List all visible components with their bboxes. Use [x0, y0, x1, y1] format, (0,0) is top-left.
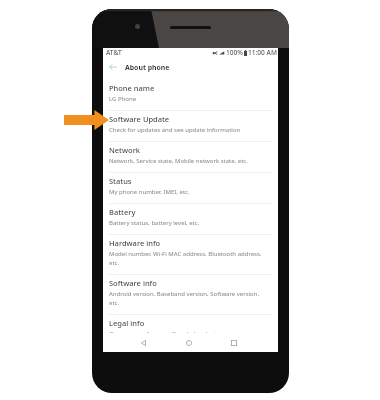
button[interactable]: Software Update — [103, 109, 278, 140]
staticText: Battery status, battery level, etc. — [109, 219, 200, 227]
staticText: Battery — [109, 207, 136, 217]
staticText: My phone number, IMEI, etc. — [109, 188, 190, 196]
staticText: 100% — [226, 48, 243, 57]
staticText: Open source licenses, Google legal, etc. — [109, 330, 221, 338]
staticText: Legal info — [109, 318, 145, 328]
staticText: Network, Service state, Mobile network s… — [109, 157, 248, 165]
button[interactable]: Recents — [211, 333, 256, 352]
other: Callout arrow — [64, 110, 109, 130]
button[interactable]: Back — [121, 333, 166, 352]
staticText: Model number, Wi-Fi MAC address, Bluetoo… — [109, 250, 266, 267]
staticText: Network — [109, 145, 140, 155]
button[interactable]: Status — [103, 171, 278, 202]
staticText: Software Update — [109, 114, 170, 124]
staticText: AT&T — [106, 48, 122, 57]
staticText: 11:00 AM — [248, 48, 277, 57]
button[interactable]: Back — [108, 61, 118, 73]
button[interactable]: Phone name — [103, 78, 278, 109]
staticText: LG Phone — [109, 95, 137, 103]
staticText: About phone — [125, 63, 170, 72]
button[interactable]: Hardware info — [103, 233, 278, 273]
button[interactable]: Battery — [103, 202, 278, 233]
button[interactable]: Software info — [103, 273, 278, 313]
button[interactable]: Home — [166, 333, 211, 352]
button[interactable]: Legal info — [103, 313, 278, 344]
staticText: Status — [109, 176, 132, 186]
button[interactable]: Network — [103, 140, 278, 171]
staticText: Android version, Baseband version, Softw… — [109, 290, 266, 307]
staticText: Phone name — [109, 83, 155, 93]
button[interactable]: Back — [103, 57, 278, 77]
staticText: Check for updates and see update informa… — [109, 126, 241, 134]
staticText: Software info — [109, 278, 157, 288]
staticText: Hardware info — [109, 238, 161, 248]
